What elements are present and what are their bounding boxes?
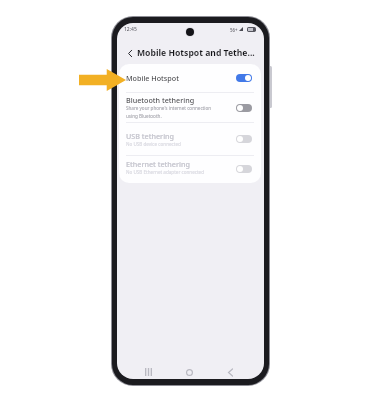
button[interactable]: Back <box>125 47 135 59</box>
button[interactable]: USB tethering <box>119 122 261 155</box>
button[interactable]: Toggle <box>236 74 252 82</box>
button[interactable]: Back <box>220 364 240 379</box>
staticText: Mobile Hotspot <box>126 73 179 83</box>
staticText: Bluetooth tethering <box>126 95 195 105</box>
staticText: 12:45 <box>124 26 137 33</box>
button[interactable]: Toggle <box>236 165 252 173</box>
staticText: Share your phone's internet connection u… <box>126 105 212 119</box>
staticText: No USB device connected <box>126 141 181 147</box>
button[interactable]: Recents <box>138 364 158 379</box>
staticText: 56+ <box>230 27 238 33</box>
button[interactable]: Ethernet tethering <box>119 155 261 183</box>
button[interactable]: Mobile Hotspot <box>119 64 261 92</box>
button[interactable]: Home <box>179 364 199 379</box>
button[interactable]: Toggle <box>236 135 252 143</box>
staticText: Mobile Hotspot and Tethe... <box>137 47 255 59</box>
button[interactable]: Bluetooth tethering <box>119 93 261 122</box>
staticText: No USB Ethernet adapter connected <box>126 169 205 175</box>
staticText: USB tethering <box>126 131 175 141</box>
staticText: Ethernet tethering <box>126 159 190 169</box>
button[interactable]: Toggle <box>236 104 252 112</box>
